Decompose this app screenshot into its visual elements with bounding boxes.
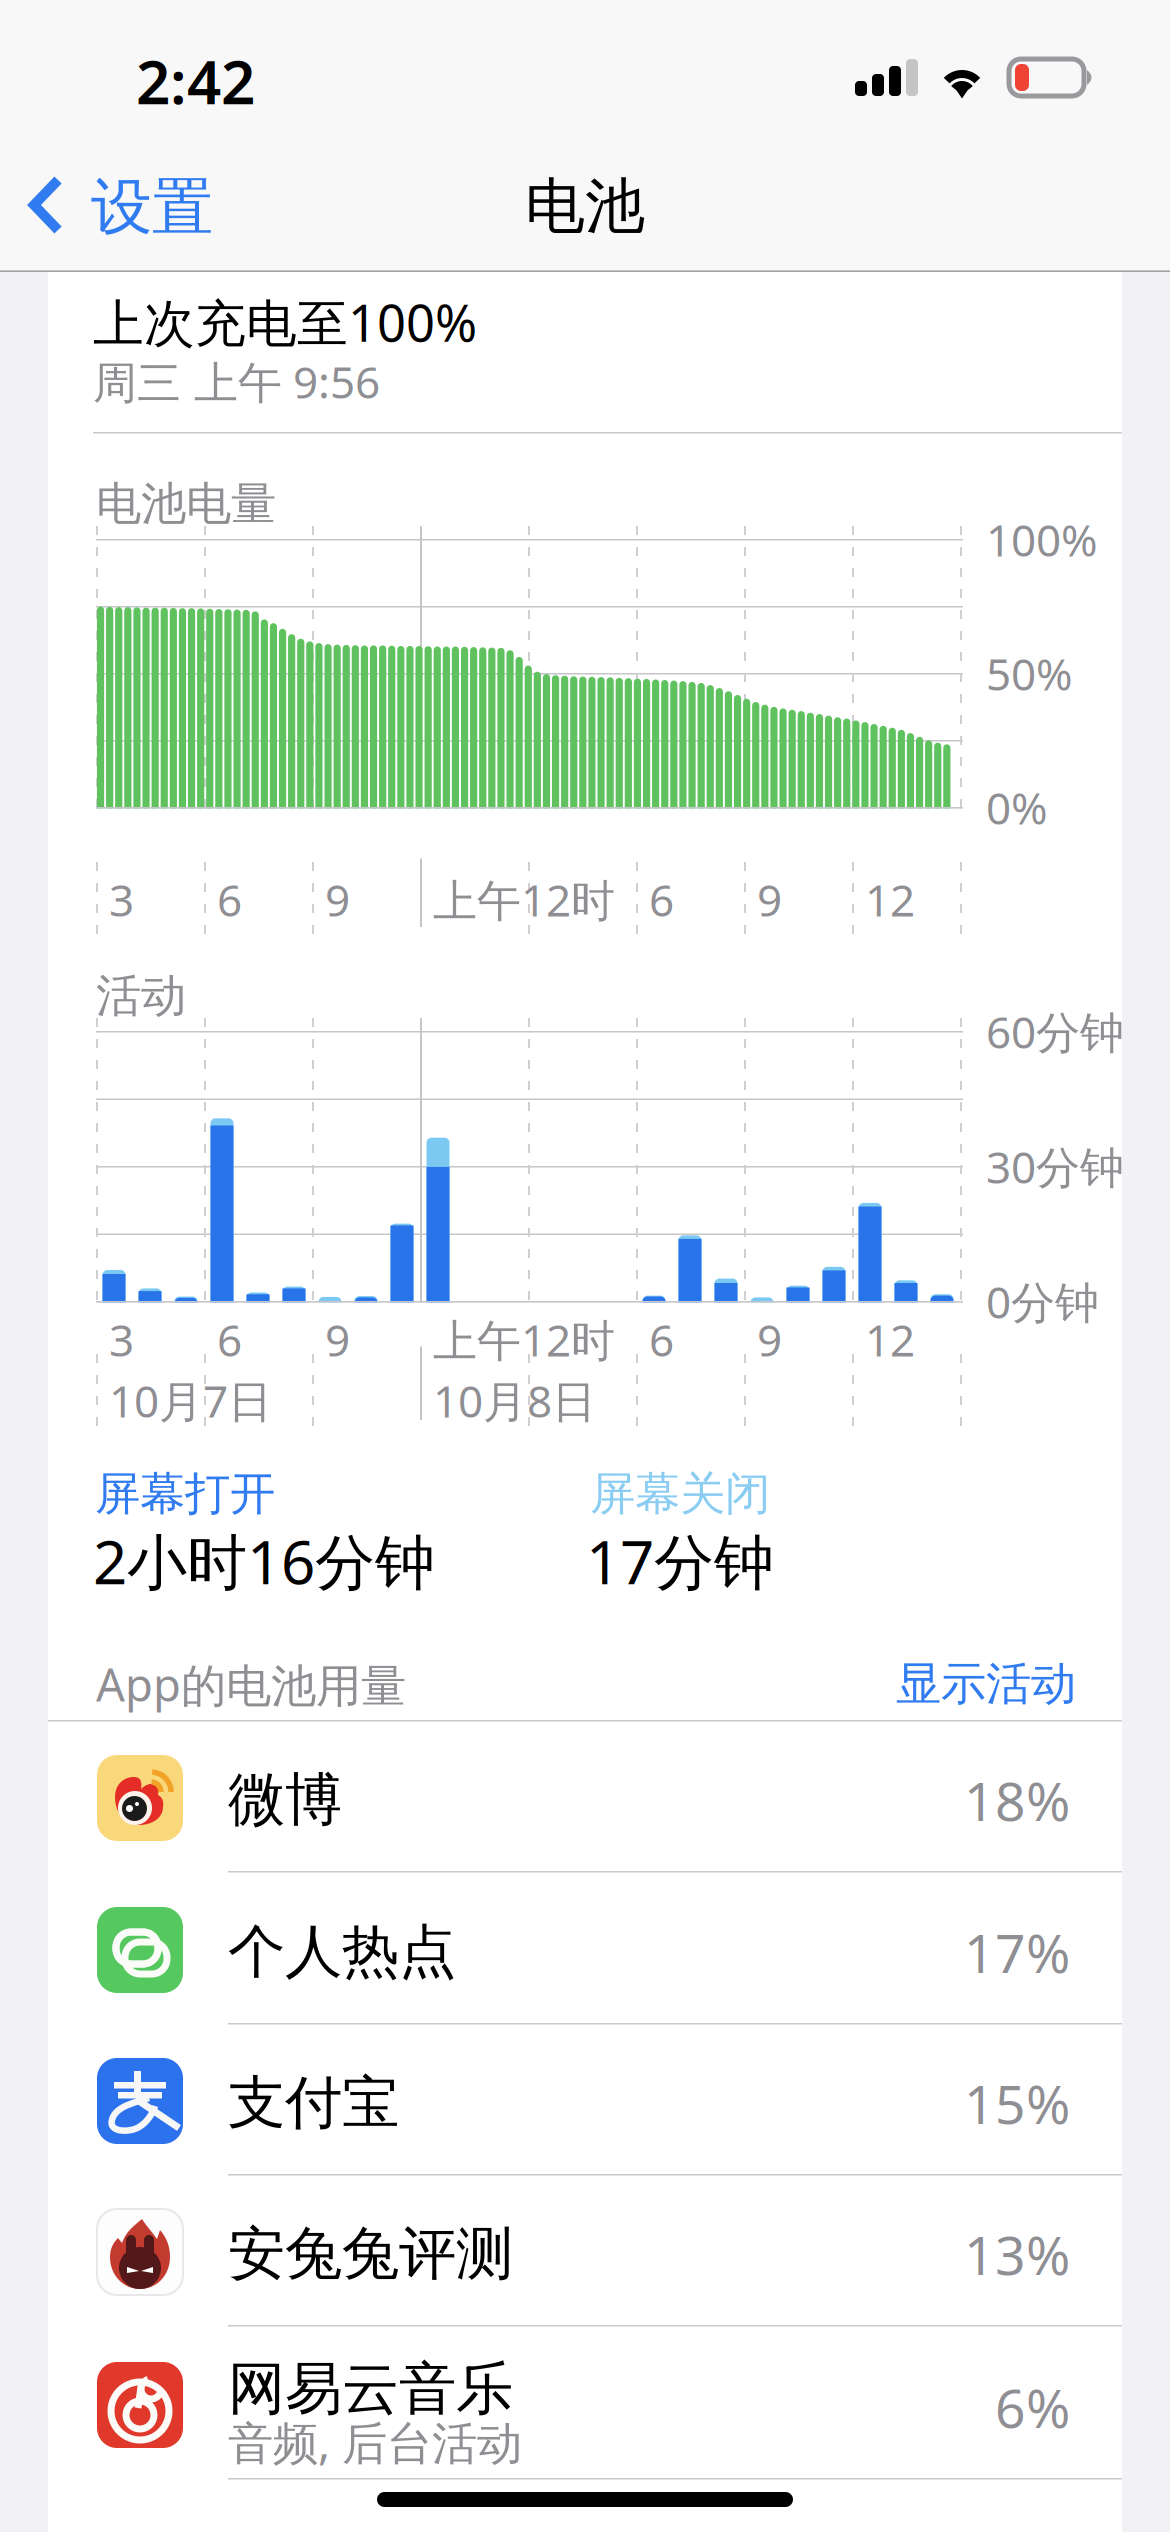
staticText: 9 (757, 870, 782, 929)
staticText: 上次充电至100% (93, 288, 477, 356)
staticText: 12 (865, 870, 915, 929)
staticText: 60分钟 (986, 1002, 1124, 1061)
staticText: 10月8日 (433, 1371, 596, 1430)
staticText: 电池电量 (96, 476, 276, 532)
staticText: 2小时16分钟 (93, 1521, 435, 1601)
staticText: 9 (325, 1310, 350, 1369)
button[interactable]: 设置 (12, 151, 242, 261)
staticText: 网易云音乐 (228, 2354, 513, 2424)
staticText: 15% (964, 2068, 1070, 2139)
staticText: 设置 (91, 170, 213, 245)
button[interactable]: 微博 (48, 1721, 1122, 1872)
button[interactable]: 个人热点 (48, 1873, 1122, 2024)
staticText: 音频, 后台活动 (228, 2412, 522, 2472)
staticText: 上午12时 (433, 870, 615, 929)
staticText: 17分钟 (586, 1521, 774, 1601)
staticText: 100% (986, 510, 1098, 569)
button[interactable]: 网易云音乐 (48, 2328, 1122, 2479)
staticText: 9 (757, 1310, 782, 1369)
staticText: 0% (986, 778, 1048, 837)
staticText: 活动 (96, 968, 186, 1024)
staticText: 0分钟 (986, 1272, 1099, 1331)
button[interactable]: 安兔兔评测 (48, 2175, 1122, 2326)
staticText: 6% (995, 2372, 1070, 2443)
staticText: 17% (964, 1917, 1070, 1988)
staticText: 13% (964, 2219, 1070, 2290)
button[interactable]: 显示活动 (796, 1642, 1076, 1722)
staticText: 6 (217, 870, 242, 929)
staticText: 2:42 (136, 41, 255, 121)
staticText: 9 (325, 870, 350, 929)
staticText: 上午12时 (433, 1310, 615, 1369)
staticText: 30分钟 (986, 1137, 1124, 1196)
staticText: 18% (964, 1765, 1070, 1836)
staticText: 显示活动 (896, 1656, 1076, 1712)
staticText: 6 (649, 870, 674, 929)
staticText: 屏幕关闭 (590, 1466, 770, 1522)
staticText: App的电池用量 (96, 1654, 406, 1714)
staticText: 6 (217, 1310, 242, 1369)
staticText: 10月7日 (109, 1371, 272, 1430)
staticText: 3 (109, 870, 134, 929)
staticText: 3 (109, 1310, 134, 1369)
staticText: 个人热点 (228, 1917, 456, 1987)
staticText: 微博 (228, 1765, 342, 1835)
staticText: 6 (649, 1310, 674, 1369)
staticText: 50% (986, 644, 1073, 703)
staticText: 支付宝 (228, 2068, 399, 2138)
staticText: 周三 上午 9:56 (93, 352, 380, 411)
staticText: 屏幕打开 (95, 1466, 275, 1522)
staticText: 电池 (525, 170, 645, 243)
staticText: 12 (865, 1310, 915, 1369)
button[interactable]: 支付宝 (48, 2024, 1122, 2175)
staticText: 安兔兔评测 (228, 2219, 513, 2289)
